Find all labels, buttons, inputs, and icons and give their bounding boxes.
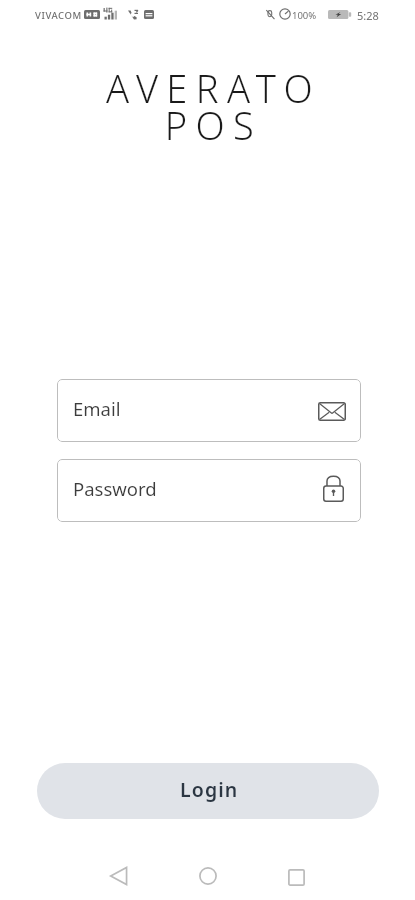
button[interactable]: Home — [185, 853, 230, 898]
staticText: 5:28 — [357, 8, 379, 23]
button[interactable]: Recent apps — [274, 855, 319, 900]
other: Show password — [323, 475, 344, 502]
staticText: VIVACOM — [35, 9, 82, 22]
button[interactable]: Email — [57, 379, 361, 442]
staticText: Login — [180, 776, 239, 803]
staticText: AVERATO POS — [6, 62, 415, 151]
staticText: Email — [73, 396, 121, 421]
staticText: Password — [73, 476, 157, 501]
other: Email address — [318, 402, 346, 421]
button[interactable]: Password — [57, 459, 361, 522]
button[interactable]: Back — [96, 853, 141, 898]
button[interactable]: Login — [37, 763, 379, 819]
staticText: 100% — [292, 9, 317, 22]
